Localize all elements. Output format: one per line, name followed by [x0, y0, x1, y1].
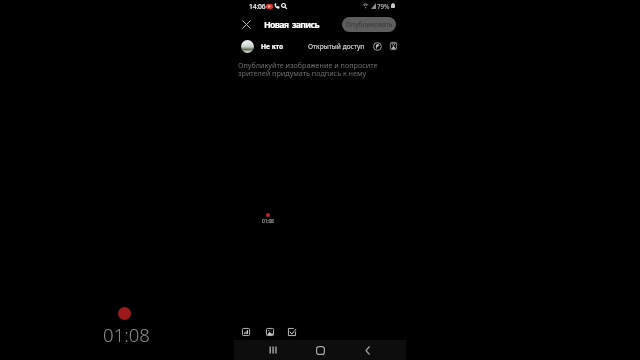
- button[interactable]: Аватар профиля: [241, 40, 254, 53]
- staticText: зрителей придумать подпись к нему: [238, 68, 367, 78]
- button[interactable]: Аудитория: [371, 40, 383, 52]
- staticText: Открытый доступ: [308, 42, 365, 51]
- staticText: 79%: [377, 2, 390, 11]
- button[interactable]: Опубликовать: [342, 17, 396, 32]
- button[interactable]: Запланировать: [387, 40, 399, 52]
- staticText: Не кто: [261, 42, 284, 51]
- staticText: Опубликовать: [346, 20, 393, 29]
- button[interactable]: Голосование: [285, 325, 299, 339]
- button[interactable]: Не кто: [259, 38, 283, 54]
- button[interactable]: Открытый доступ: [305, 38, 364, 54]
- button[interactable]: Главный экран: [312, 342, 328, 358]
- button[interactable]: Закрыть: [237, 15, 255, 33]
- staticText: Новая: [264, 19, 289, 31]
- button[interactable]: Опрос: [239, 325, 253, 339]
- staticText: 01:08: [103, 322, 150, 347]
- button[interactable]: Изображение: [263, 325, 277, 339]
- staticText: 14:06: [249, 2, 266, 11]
- staticText: Опубликуйте изображение и попросите: [238, 60, 378, 70]
- button[interactable]: Назад: [359, 342, 375, 358]
- staticText: запись: [292, 19, 319, 31]
- button[interactable]: Текст записи: [234, 55, 406, 317]
- staticText: 01:08: [262, 218, 274, 225]
- button[interactable]: Недавние приложения: [265, 342, 281, 358]
